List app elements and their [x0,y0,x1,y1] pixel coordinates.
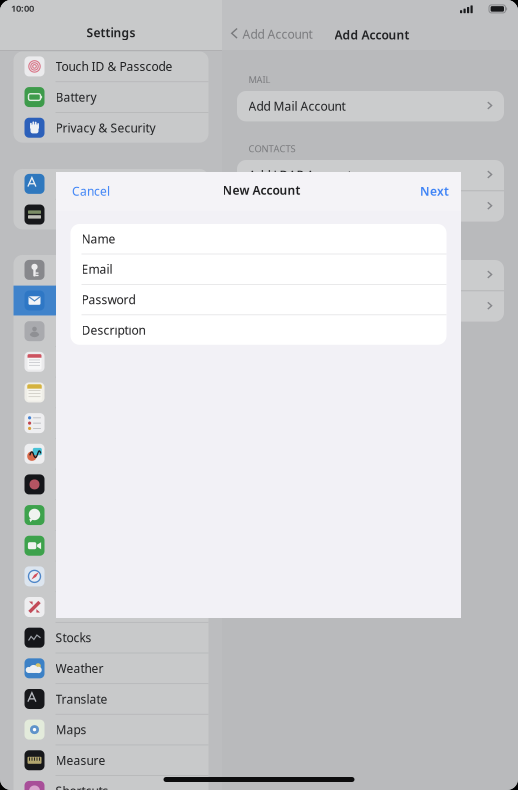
staticText: Add LDAP Account [248,167,351,183]
button[interactable]: Photos [13,469,208,499]
button[interactable]: Maps [13,715,208,745]
button[interactable]: Name [70,224,446,254]
button[interactable]: Touch ID & Passcode [13,51,208,81]
button[interactable]: Stocks [13,623,208,653]
staticText: Measure [55,752,105,768]
button[interactable]: Email [70,254,446,284]
staticText: New Account [222,182,300,198]
button[interactable]: Mail [13,286,208,315]
button[interactable]: Contacts [13,316,208,346]
button[interactable]: Notes [13,378,208,407]
button[interactable]: Add Subscribed Calendar [237,291,504,322]
staticText: Translate [55,691,107,707]
staticText: Contacts [55,323,104,339]
staticText: Description [81,322,145,338]
staticText: Add Account [242,26,312,42]
staticText: Add Account [334,27,409,43]
staticText: Password [81,292,135,307]
staticText: Cancel [72,183,110,199]
button[interactable]: Wallet [13,200,208,229]
button[interactable]: Privacy & Security [13,113,208,143]
staticText: 10:00 [11,2,34,14]
button[interactable]: News [13,592,208,622]
button[interactable]: Weather [13,653,208,683]
button[interactable]: Cancel [56,179,121,203]
button[interactable]: FaceTime [13,531,208,561]
staticText: App Store [55,176,110,192]
button[interactable]: Add CardDAV Account [237,191,504,222]
button[interactable]: Messages [13,500,208,530]
button[interactable]: Battery [13,82,208,112]
button[interactable]: Add CalDAV Account [237,260,504,290]
staticText: Passwords [55,262,115,278]
staticText: Add Mail Account [248,98,345,114]
staticText: Name [81,231,115,247]
staticText: Maps [55,722,86,738]
staticText: Weather [55,660,103,676]
button[interactable]: Password [70,285,446,314]
button[interactable]: Add LDAP Account [237,160,504,190]
staticText: Email [81,261,112,277]
button[interactable]: Freeform [13,439,208,469]
button[interactable]: Reminders [13,408,208,438]
button[interactable]: Calendar [13,347,208,377]
staticText: CALENDARS [248,242,301,255]
button[interactable]: App Store [13,169,208,199]
staticText: Privacy & Security [55,120,155,136]
button[interactable]: Measure [13,745,208,775]
staticText: Stocks [55,630,91,646]
staticText: Mail [55,293,79,308]
button[interactable]: Add Account [223,23,318,45]
button[interactable]: Shortcuts [13,776,208,790]
button[interactable]: Description [70,315,446,345]
staticText: Battery [55,89,96,105]
staticText: Shortcuts [55,783,108,790]
staticText: CONTACTS [248,142,295,155]
staticText: MAIL [248,73,270,86]
staticText: Next [420,183,449,199]
button[interactable]: Passwords [13,255,208,285]
staticText: Touch ID & Passcode [55,58,172,74]
button[interactable]: Translate [13,684,208,714]
button[interactable]: Add Mail Account [237,91,504,121]
staticText: Settings [86,24,135,40]
button[interactable]: Safari [13,561,208,591]
button[interactable]: Next [409,179,463,203]
